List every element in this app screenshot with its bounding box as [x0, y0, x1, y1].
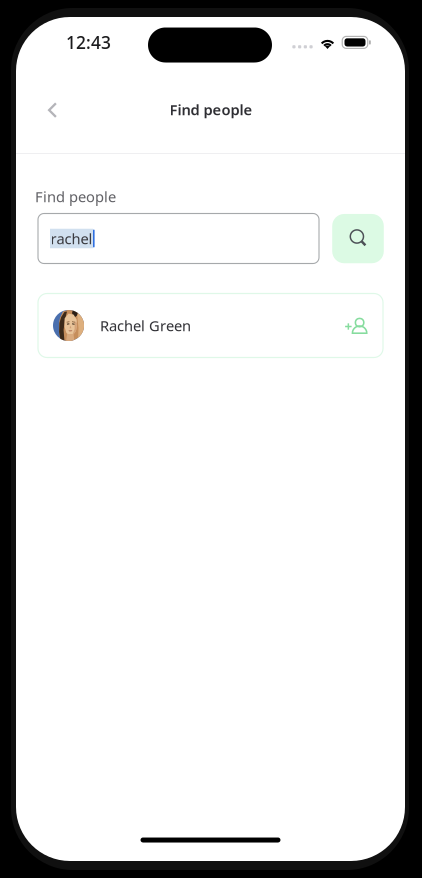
- button[interactable]: Search: [332, 214, 384, 263]
- staticText: Rachel Green: [100, 316, 191, 335]
- staticText: 12:43: [66, 31, 111, 54]
- staticText: Find people: [169, 100, 252, 119]
- staticText: Find people: [35, 187, 116, 206]
- staticText: rachel: [50, 229, 92, 248]
- button[interactable]: Rachel Green: [38, 293, 383, 357]
- button[interactable]: Back: [30, 88, 74, 132]
